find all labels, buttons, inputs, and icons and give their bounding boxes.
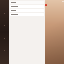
button[interactable]: Featured item <box>45 0 64 64</box>
button[interactable] <box>10 1 44 4</box>
button[interactable] <box>10 13 44 16</box>
button[interactable] <box>10 5 44 8</box>
button[interactable]: Navigation rail <box>0 0 9 64</box>
button[interactable] <box>10 9 44 12</box>
button[interactable]: Alert <box>45 4 47 6</box>
